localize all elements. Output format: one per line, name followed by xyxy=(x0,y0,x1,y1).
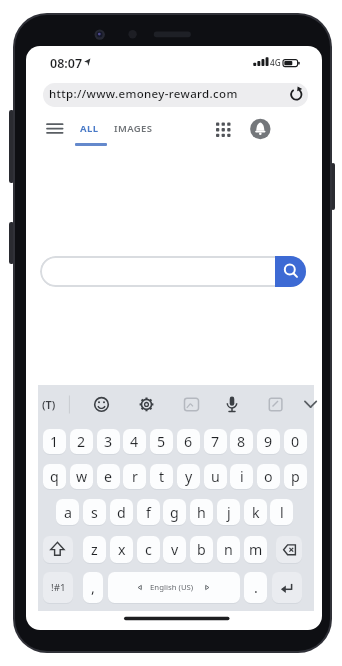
staticText: 7 xyxy=(211,432,220,451)
button[interactable]: w xyxy=(70,464,93,489)
staticText: m xyxy=(249,540,263,559)
button[interactable]: 6 xyxy=(177,429,200,454)
button[interactable]: , xyxy=(83,572,103,603)
staticText: 1 xyxy=(50,432,59,451)
button[interactable]: IMAGES xyxy=(112,121,154,135)
button[interactable]: 4 xyxy=(123,429,146,454)
staticText: d xyxy=(117,503,126,522)
button[interactable] xyxy=(181,394,201,415)
staticText: w xyxy=(76,467,88,486)
button[interactable]: d xyxy=(110,499,133,525)
button[interactable] xyxy=(108,572,240,603)
staticText: q xyxy=(50,467,59,486)
button[interactable] xyxy=(276,536,302,563)
button[interactable]: 1 xyxy=(43,429,66,454)
staticText: 5 xyxy=(157,432,166,451)
staticText: r xyxy=(132,467,138,486)
button[interactable]: o xyxy=(257,464,280,489)
button[interactable]: 9 xyxy=(257,429,280,454)
button[interactable]: y xyxy=(177,464,200,489)
button[interactable]: c xyxy=(137,536,160,563)
button[interactable] xyxy=(43,536,73,563)
staticText: f xyxy=(146,503,151,522)
staticText: IMAGES xyxy=(114,122,153,135)
button[interactable]: h xyxy=(190,499,213,525)
button[interactable] xyxy=(272,572,302,603)
staticText: u xyxy=(211,467,220,486)
staticText: 2 xyxy=(77,432,86,451)
staticText: English (US) xyxy=(150,582,194,593)
button[interactable]: 7 xyxy=(204,429,227,454)
staticText: l xyxy=(280,503,284,522)
staticText: 4G xyxy=(270,57,281,68)
staticText: s xyxy=(91,503,98,522)
button[interactable]: f xyxy=(137,499,160,525)
button[interactable] xyxy=(39,394,59,415)
staticText: a xyxy=(64,503,72,522)
button[interactable]: x xyxy=(110,536,133,563)
staticText: b xyxy=(197,540,206,559)
staticText: 4 xyxy=(130,432,139,451)
staticText: h xyxy=(197,503,206,522)
staticText: o xyxy=(264,467,273,486)
button[interactable] xyxy=(249,118,272,140)
staticText: 08:07 xyxy=(50,55,83,72)
button[interactable]: 5 xyxy=(150,429,173,454)
staticText: t xyxy=(159,467,165,486)
button[interactable] xyxy=(210,118,236,139)
button[interactable]: q xyxy=(43,464,66,489)
staticText: , xyxy=(91,578,95,597)
button[interactable]: !#1 xyxy=(43,572,73,603)
button[interactable] xyxy=(301,394,321,415)
staticText: z xyxy=(91,540,98,559)
button[interactable]: a xyxy=(56,499,79,525)
button[interactable]: n xyxy=(217,536,240,563)
staticText: 6 xyxy=(184,432,193,451)
staticText: i xyxy=(240,467,244,486)
button[interactable]: k xyxy=(244,499,267,525)
staticText: 8 xyxy=(237,432,246,451)
staticText: c xyxy=(145,540,152,559)
staticText: y xyxy=(185,467,193,486)
button[interactable]: i xyxy=(230,464,253,489)
button[interactable]: g xyxy=(163,499,186,525)
staticText: ALL xyxy=(80,122,99,135)
staticText: 0 xyxy=(291,432,300,451)
button[interactable] xyxy=(275,256,306,287)
staticText: n xyxy=(224,540,233,559)
button[interactable]: . xyxy=(244,572,267,603)
button[interactable]: j xyxy=(217,499,240,525)
staticText: j xyxy=(227,503,231,522)
staticText: http://www.emoney-reward.com xyxy=(49,86,238,102)
button[interactable]: r xyxy=(123,464,146,489)
staticText: 9 xyxy=(264,432,273,451)
button[interactable]: s xyxy=(83,499,106,525)
button[interactable]: 2 xyxy=(70,429,93,454)
button[interactable]: m xyxy=(244,536,267,563)
button[interactable]: e xyxy=(97,464,120,489)
button[interactable]: 3 xyxy=(97,429,120,454)
staticText: (T) xyxy=(42,397,56,412)
button[interactable]: u xyxy=(204,464,227,489)
button[interactable]: 0 xyxy=(284,429,307,454)
button[interactable] xyxy=(40,256,306,287)
button[interactable] xyxy=(92,394,112,415)
button[interactable]: ALL xyxy=(77,121,101,135)
button[interactable] xyxy=(42,118,68,139)
button[interactable] xyxy=(266,394,286,415)
button[interactable]: 8 xyxy=(230,429,253,454)
button[interactable]: b xyxy=(190,536,213,563)
button[interactable]: p xyxy=(284,464,307,489)
staticText: !#1 xyxy=(51,581,66,594)
staticText: g xyxy=(170,503,179,522)
staticText: x xyxy=(118,540,126,559)
button[interactable] xyxy=(222,394,242,415)
button[interactable]: v xyxy=(163,536,186,563)
button[interactable]: t xyxy=(150,464,173,489)
staticText: p xyxy=(291,467,300,486)
button[interactable]: l xyxy=(270,499,293,525)
button[interactable] xyxy=(137,394,157,415)
button[interactable]: http://www.emoney-reward.com xyxy=(43,83,308,107)
staticText: . xyxy=(254,578,258,597)
button[interactable]: z xyxy=(83,536,106,563)
